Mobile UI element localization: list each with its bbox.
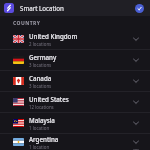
other: Expand Malaysia: [130, 117, 142, 129]
button[interactable]: Malaysia: [0, 113, 150, 133]
button[interactable]: United Kingdom: [0, 29, 150, 49]
staticText: Canada: [29, 74, 52, 82]
staticText: United States: [29, 95, 69, 103]
button[interactable]: Germany: [0, 50, 150, 70]
staticText: Argentina: [29, 135, 59, 143]
staticText: Smart Location: [20, 4, 135, 12]
other: Expand United States: [130, 96, 142, 108]
button[interactable]: Canada: [0, 71, 150, 91]
staticText: 12 locations: [29, 104, 54, 110]
staticText: COUNTRY: [13, 20, 41, 27]
other: Expand Argentina: [130, 136, 142, 148]
staticText: 3 locations: [29, 62, 52, 68]
staticText: 1 location: [29, 125, 50, 131]
other: Expand United Kingdom: [130, 33, 142, 45]
staticText: 2 locations: [29, 41, 52, 47]
staticText: United Kingdom: [29, 32, 78, 40]
other: Expand Germany: [130, 54, 142, 66]
staticText: 3 locations: [29, 83, 52, 89]
staticText: Malaysia: [29, 116, 55, 124]
other: Selected: [135, 4, 144, 13]
button[interactable]: Argentina: [0, 134, 150, 150]
button[interactable]: United States: [0, 92, 150, 112]
staticText: Germany: [29, 53, 57, 61]
other: Expand Canada: [130, 75, 142, 87]
button[interactable]: Smart Location: [0, 0, 150, 16]
staticText: 1 location: [29, 144, 50, 150]
